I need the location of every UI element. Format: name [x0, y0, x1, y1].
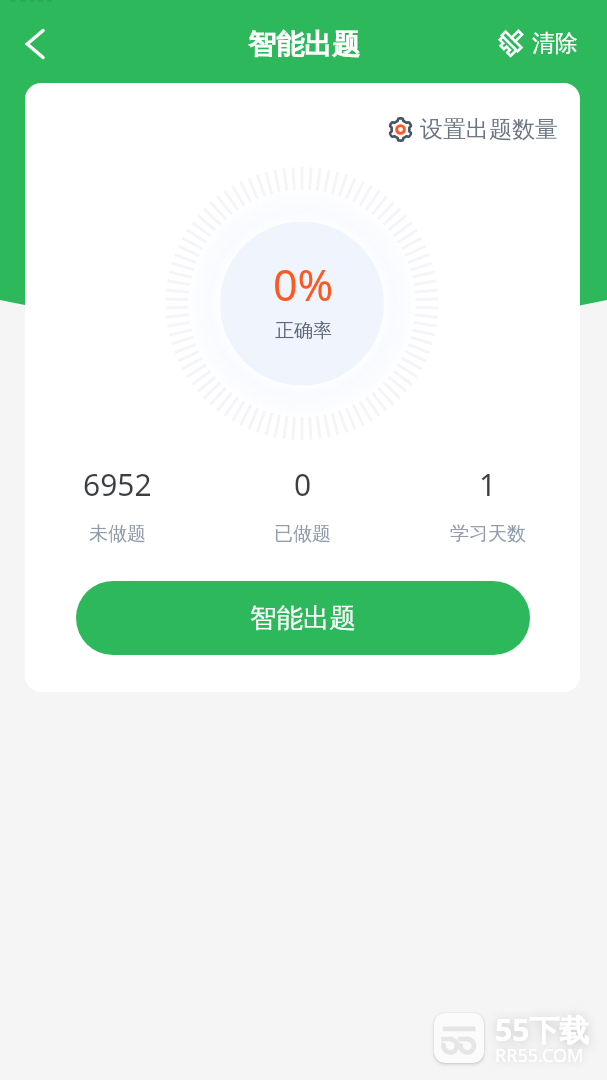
staticText: 智能出题 [248, 27, 360, 62]
staticText: 未做题 [89, 522, 146, 546]
button[interactable]: 0 [210, 464, 395, 546]
staticText: 清除 [532, 29, 578, 58]
staticText: 1 [479, 464, 497, 505]
staticText: 6952 [83, 464, 152, 505]
button[interactable]: 1 [395, 464, 580, 546]
staticText: 设置出题数量 [420, 115, 558, 144]
staticText: 正确率 [275, 319, 332, 343]
staticText: 学习天数 [450, 522, 526, 546]
staticText: 55下载 [495, 1009, 590, 1050]
staticText: 已做题 [274, 522, 331, 546]
button[interactable]: 智能出题 [76, 581, 530, 655]
staticText: 0 [294, 464, 312, 505]
button[interactable]: Back [9, 18, 61, 70]
staticText: 智能出题 [250, 601, 356, 634]
staticText: 0% [273, 255, 334, 314]
button[interactable]: 设置出题数量 [378, 107, 580, 152]
button[interactable]: 清除 [489, 21, 607, 66]
button[interactable]: 6952 [25, 464, 210, 546]
staticText: RR55.COM [495, 1043, 584, 1068]
